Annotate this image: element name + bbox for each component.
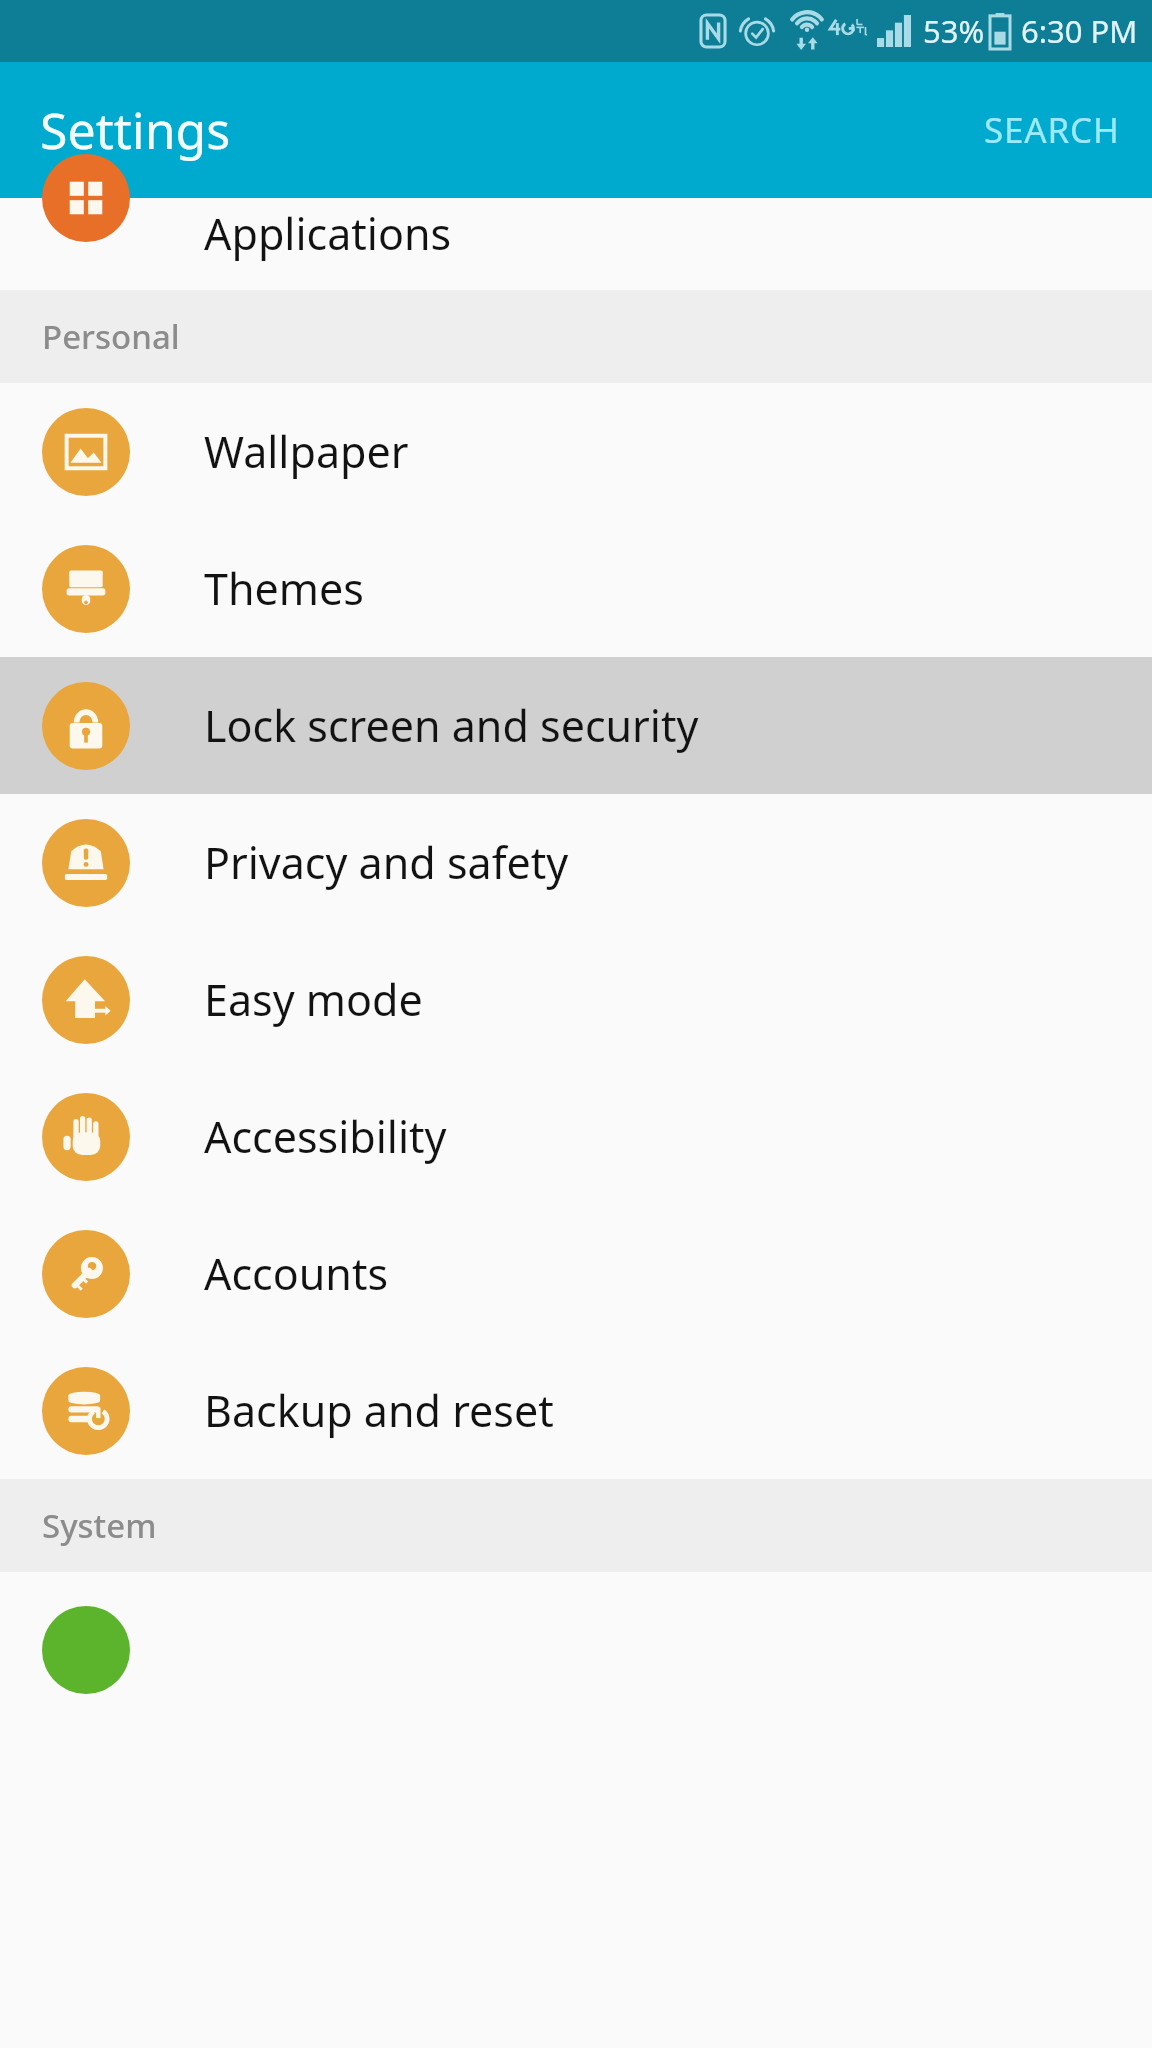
staticText: Accessibility: [204, 1107, 447, 1166]
button[interactable]: Applications: [0, 198, 1152, 290]
staticText: 53%: [923, 10, 985, 52]
staticText: Personal: [42, 314, 180, 359]
staticText: SEARCH: [984, 106, 1120, 154]
staticText: Easy mode: [204, 970, 423, 1029]
staticText: Backup and reset: [204, 1381, 554, 1440]
button[interactable]: Wallpaper: [0, 383, 1152, 520]
button[interactable]: Backup and reset: [0, 1342, 1152, 1479]
button[interactable]: Privacy and safety: [0, 794, 1152, 931]
staticText: Settings: [40, 96, 231, 164]
staticText: Applications: [204, 204, 452, 263]
staticText: Accounts: [204, 1244, 389, 1303]
button[interactable]: About device: [0, 1572, 1152, 1632]
button[interactable]: Accessibility: [0, 1068, 1152, 1205]
staticText: Themes: [204, 559, 364, 618]
staticText: System: [42, 1503, 157, 1548]
staticText: 6:30 PM: [1021, 10, 1138, 52]
button[interactable]: Lock screen and security: [0, 657, 1152, 794]
button[interactable]: Accounts: [0, 1205, 1152, 1342]
button[interactable]: SEARCH: [952, 84, 1152, 176]
staticText: Privacy and safety: [204, 833, 569, 892]
staticText: Wallpaper: [204, 422, 409, 481]
staticText: Lock screen and security: [204, 696, 699, 755]
button[interactable]: Easy mode: [0, 931, 1152, 1068]
button[interactable]: Themes: [0, 520, 1152, 657]
